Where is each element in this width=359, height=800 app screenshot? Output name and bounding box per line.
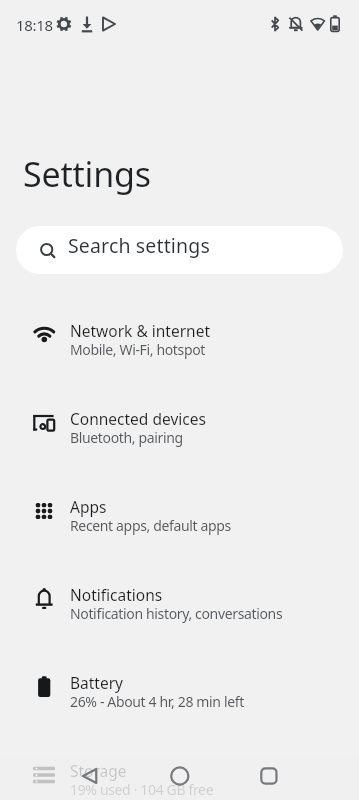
button[interactable]: Storage: [0, 730, 359, 800]
staticText: Recent apps, default apps: [70, 516, 231, 535]
staticText: Notifications: [70, 584, 163, 605]
button[interactable]: Apps: [0, 466, 359, 554]
staticText: 26% - About 4 hr, 28 min left: [70, 692, 244, 711]
staticText: Network & internet: [70, 320, 210, 341]
button[interactable]: [239, 757, 359, 800]
staticText: Search settings: [68, 232, 210, 259]
button[interactable]: [119, 757, 239, 800]
staticText: Battery: [70, 672, 124, 693]
staticText: Mobile, Wi-Fi, hotspot: [70, 340, 206, 359]
button[interactable]: [0, 757, 119, 800]
staticText: Settings: [23, 151, 151, 197]
staticText: Notification history, conversations: [70, 604, 283, 623]
staticText: Storage: [70, 760, 127, 781]
button[interactable]: Search settings: [16, 226, 343, 274]
staticText: Bluetooth, pairing: [70, 428, 183, 447]
button[interactable]: Battery: [0, 642, 359, 730]
button[interactable]: Network & internet: [0, 290, 359, 378]
staticText: 19% used · 104 GB free: [70, 780, 214, 799]
staticText: 18:18: [16, 15, 53, 35]
button[interactable]: Connected devices: [0, 378, 359, 466]
staticText: Apps: [70, 496, 107, 517]
button[interactable]: Notifications: [0, 554, 359, 642]
staticText: Connected devices: [70, 408, 206, 429]
